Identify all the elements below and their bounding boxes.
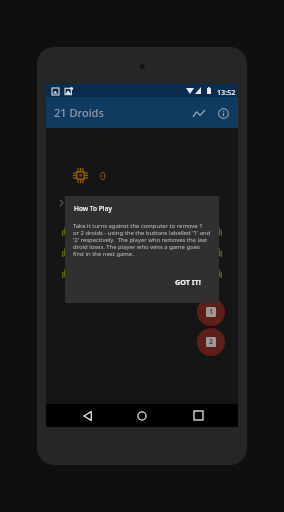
staticText: 1 <box>209 307 214 317</box>
button[interactable]: Info <box>211 101 235 125</box>
staticText: 2 <box>209 337 214 347</box>
button[interactable]: Home <box>127 404 157 427</box>
staticText: 21 Droids <box>54 105 104 120</box>
button[interactable]: GOT IT! <box>169 273 207 291</box>
button[interactable]: Statistics <box>187 101 211 125</box>
button[interactable]: Back <box>72 404 102 427</box>
staticText: How To Play <box>74 204 112 213</box>
button[interactable]: Remove 2 droids <box>197 328 225 356</box>
button[interactable]: Remove 1 droids <box>197 298 225 326</box>
staticText: GOT IT! <box>175 277 201 287</box>
staticText: Take it turns against the computer to re… <box>73 222 223 258</box>
button[interactable]: Recents <box>183 404 213 427</box>
staticText: 0 <box>100 169 106 183</box>
staticText: 13:52 <box>217 87 236 97</box>
